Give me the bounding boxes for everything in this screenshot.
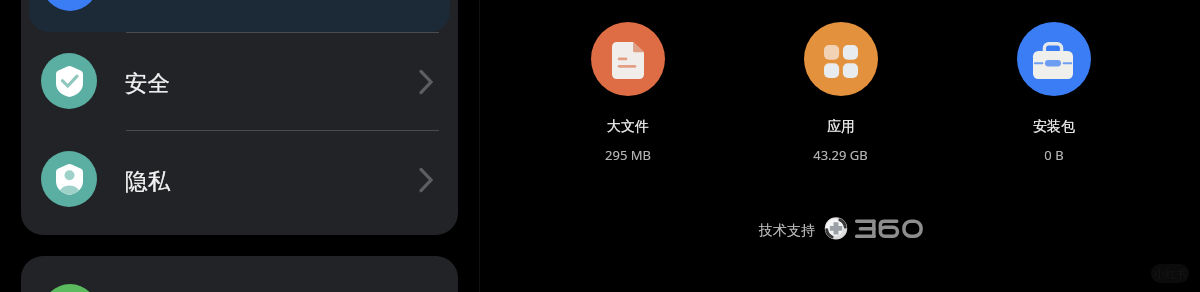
staticText: 安全 xyxy=(125,69,170,97)
button[interactable]: 应用 xyxy=(803,22,878,164)
staticText: 应用 xyxy=(827,118,855,136)
staticText: 隐私 xyxy=(125,167,170,195)
staticText: 技术支持 xyxy=(759,222,815,240)
staticText: 295 MB xyxy=(605,146,651,164)
button[interactable]: 安装包 xyxy=(1016,22,1091,164)
button[interactable]: 安全 xyxy=(21,32,458,130)
staticText: 43.29 GB xyxy=(813,146,868,164)
staticText: 0 B xyxy=(1044,146,1064,164)
button[interactable] xyxy=(29,0,450,32)
staticText: 大文件 xyxy=(607,118,649,136)
button[interactable]: 大文件 xyxy=(590,22,665,164)
staticText: 安装包 xyxy=(1033,118,1075,136)
button[interactable]: 隐私 xyxy=(21,130,458,228)
